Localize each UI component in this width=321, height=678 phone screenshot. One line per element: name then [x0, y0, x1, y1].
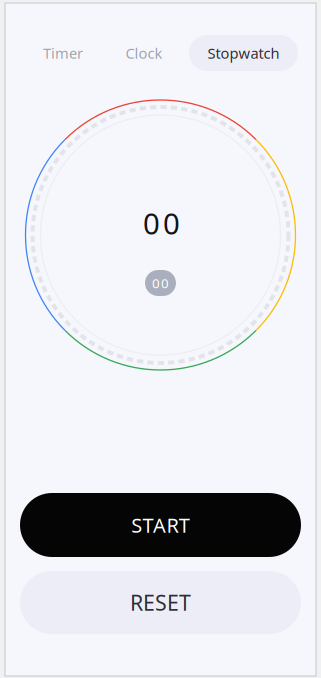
- staticText: Clock: [125, 43, 162, 63]
- button[interactable]: RESET: [20, 571, 301, 634]
- staticText: RESET: [130, 588, 191, 617]
- staticText: START: [131, 512, 190, 538]
- button[interactable]: START: [20, 493, 301, 557]
- staticText: 00: [143, 203, 180, 242]
- button[interactable]: Stopwatch: [189, 35, 298, 71]
- staticText: Stopwatch: [207, 43, 279, 63]
- button[interactable]: Timer: [22, 35, 104, 71]
- staticText: Timer: [43, 43, 83, 63]
- staticText: 00: [152, 274, 169, 292]
- button[interactable]: Clock: [104, 35, 184, 71]
